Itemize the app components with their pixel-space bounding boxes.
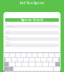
staticText: Groceries bbox=[6, 26, 14, 27]
button[interactable]: Amount bbox=[5, 29, 59, 35]
button[interactable]: Title bbox=[5, 23, 59, 29]
staticText: Add New Expense bbox=[19, 1, 44, 5]
staticText: 0.00 bbox=[6, 32, 9, 34]
button[interactable]: Category bbox=[5, 42, 59, 48]
staticText: Title bbox=[5, 23, 7, 25]
staticText: Expense Details bbox=[21, 18, 43, 22]
staticText: Food bbox=[6, 44, 10, 46]
button[interactable]: Expense Details bbox=[5, 18, 59, 22]
staticText: Date bbox=[5, 35, 8, 37]
button[interactable]: Date bbox=[5, 35, 59, 42]
staticText: Category bbox=[5, 42, 12, 44]
staticText: Amount bbox=[5, 29, 10, 31]
